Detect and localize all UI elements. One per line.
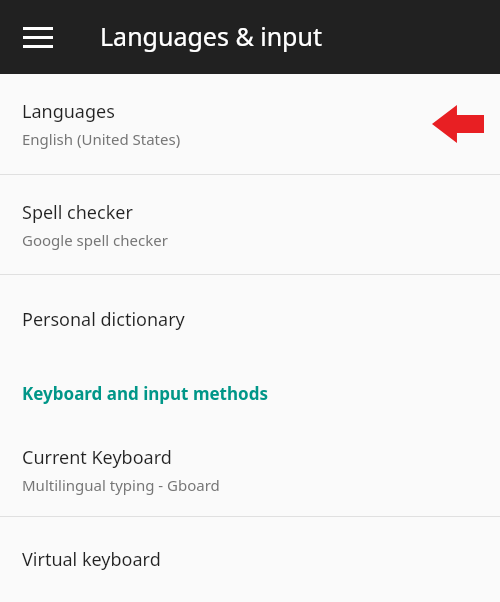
staticText: Current Keyboard — [22, 445, 172, 470]
staticText: Multilingual typing - Gboard — [22, 475, 220, 495]
staticText: Spell checker — [22, 200, 133, 225]
staticText: Google spell checker — [22, 230, 168, 250]
staticText: Keyboard and input methods — [22, 382, 268, 405]
button[interactable]: Open navigation menu — [12, 11, 64, 63]
button[interactable]: Current Keyboard — [0, 423, 500, 516]
staticText: Languages — [22, 99, 115, 124]
button[interactable]: Spell checker — [0, 175, 500, 274]
button[interactable]: Personal dictionary — [0, 275, 500, 363]
button[interactable]: Languages — [0, 74, 500, 174]
button[interactable]: Virtual keyboard — [0, 517, 500, 602]
staticText: Personal dictionary — [22, 307, 185, 332]
staticText: English (United States) — [22, 129, 181, 149]
staticText: Virtual keyboard — [22, 547, 161, 572]
staticText: Languages & input — [100, 19, 322, 53]
